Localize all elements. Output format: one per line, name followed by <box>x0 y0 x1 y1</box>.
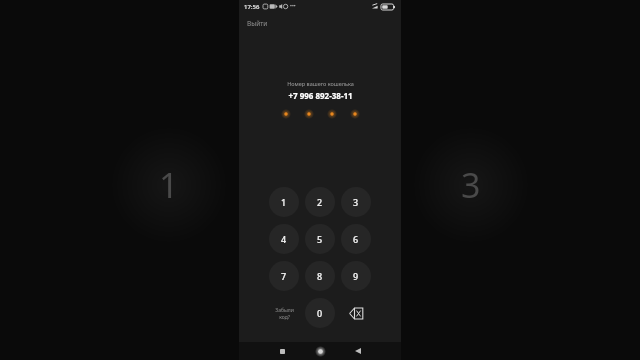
button[interactable]: 7 <box>269 261 299 291</box>
staticText: 9 <box>353 270 359 282</box>
staticText: 3 <box>461 162 481 208</box>
button[interactable]: Home <box>309 342 331 360</box>
staticText: 7 <box>281 270 287 282</box>
button[interactable]: 0 <box>305 298 335 328</box>
staticText: 17:56 <box>244 3 260 11</box>
button[interactable]: Recents <box>271 342 293 360</box>
button[interactable]: 9 <box>341 261 371 291</box>
staticText: Номер вашего кошелька <box>287 80 354 87</box>
button[interactable]: 2 <box>305 187 335 217</box>
button[interactable]: 5 <box>305 224 335 254</box>
button[interactable]: 6 <box>341 224 371 254</box>
staticText: 1 <box>281 196 287 208</box>
staticText: 2 <box>317 196 323 208</box>
staticText: 0 <box>317 307 323 319</box>
button[interactable]: 1 <box>269 187 299 217</box>
button[interactable]: Забыли код? <box>269 298 299 328</box>
staticText: 6 <box>353 233 359 245</box>
button[interactable]: Выйти <box>244 17 271 30</box>
button[interactable]: 4 <box>269 224 299 254</box>
button[interactable]: 8 <box>305 261 335 291</box>
button[interactable]: Backspace <box>341 298 371 328</box>
staticText: +7 996 892-38-11 <box>288 90 353 101</box>
staticText: 4 <box>281 233 287 245</box>
staticText: ••• <box>290 3 296 10</box>
staticText: 8 <box>317 270 323 282</box>
staticText: Забыли код? <box>275 307 294 320</box>
button[interactable]: 3 <box>341 187 371 217</box>
staticText: 1 <box>159 162 179 208</box>
staticText: Выйти <box>247 19 268 28</box>
staticText: 5 <box>317 233 323 245</box>
button[interactable]: Back <box>347 342 369 360</box>
staticText: 3 <box>353 196 359 208</box>
